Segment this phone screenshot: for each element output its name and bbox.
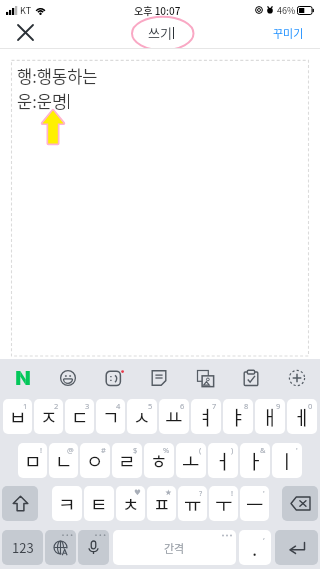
staticText: 오후 10:07: [134, 3, 181, 17]
staticText: 3: [85, 401, 90, 411]
button[interactable]: Enter: [275, 530, 318, 565]
button[interactable]: Photo: [182, 359, 228, 396]
staticText: ?: [199, 488, 203, 498]
staticText: ㅐ: [261, 403, 279, 431]
staticText: ㅎ: [150, 447, 168, 475]
staticText: 9: [276, 401, 281, 411]
staticText: !: [40, 445, 43, 455]
staticText: 123: [12, 538, 34, 557]
button[interactable]: ㄷ: [65, 399, 94, 434]
button[interactable]: ㅇ: [80, 443, 110, 478]
staticText: #: [101, 445, 106, 455]
staticText: 8: [244, 401, 249, 411]
staticText: 운:운명: [17, 89, 68, 113]
staticText: !: [231, 488, 234, 498]
button[interactable]: ㅜ: [209, 486, 238, 521]
button[interactable]: Shift: [2, 486, 38, 521]
button[interactable]: .: [239, 530, 271, 565]
button[interactable]: 꾸미기: [273, 25, 304, 41]
staticText: ): [231, 445, 234, 455]
staticText: ㄹ: [118, 447, 136, 475]
staticText: .: [252, 534, 258, 562]
button[interactable]: ㅏ: [240, 443, 270, 478]
staticText: ㅋ: [58, 490, 76, 518]
staticText: ㅑ: [229, 403, 247, 431]
staticText: ,: [263, 531, 266, 541]
button[interactable]: ㅍ: [147, 486, 176, 521]
staticText: ㅕ: [197, 403, 215, 431]
staticText: %: [163, 445, 170, 455]
button[interactable]: ㅡ: [240, 486, 269, 521]
button[interactable]: ㄹ: [112, 443, 142, 478]
staticText: 4: [116, 401, 121, 411]
staticText: 5: [148, 401, 153, 411]
button[interactable]: More: [274, 359, 320, 396]
button[interactable]: ㅋ: [52, 486, 82, 521]
button[interactable]: Naver: [0, 359, 45, 396]
staticText: ㅂ: [9, 403, 27, 431]
staticText: ㅇ: [86, 447, 104, 475]
button[interactable]: ㅕ: [191, 399, 221, 434]
button[interactable]: ㄴ: [49, 443, 78, 478]
button[interactable]: ㅗ: [176, 443, 206, 478]
button[interactable]: ㅎ: [144, 443, 174, 478]
staticText: ㅁ: [24, 447, 42, 475]
staticText: ㅍ: [153, 490, 171, 518]
staticText: 6: [180, 401, 185, 411]
button[interactable]: Language: [45, 530, 76, 565]
staticText: ㅡ: [246, 490, 264, 518]
staticText: 1: [23, 401, 28, 411]
button[interactable]: ㅔ: [287, 399, 317, 434]
staticText: ㄱ: [102, 403, 120, 431]
staticText: ♥: [134, 488, 141, 497]
staticText: ': [296, 445, 298, 455]
button[interactable]: ㄱ: [96, 399, 125, 434]
button[interactable]: Memo: [136, 359, 182, 396]
staticText: ㅈ: [40, 403, 58, 431]
staticText: ㅗ: [182, 447, 200, 475]
button[interactable]: Voice: [78, 530, 109, 565]
button[interactable]: Numbers: [2, 530, 43, 565]
button[interactable]: Backspace: [282, 486, 318, 521]
staticText: ㅏ: [246, 447, 264, 475]
staticText: ㄷ: [71, 403, 89, 431]
staticText: ㅊ: [122, 490, 140, 518]
staticText: ㅔ: [293, 403, 311, 431]
button[interactable]: Close: [12, 18, 39, 47]
button[interactable]: ㅅ: [127, 399, 157, 434]
button[interactable]: ㅓ: [208, 443, 238, 478]
staticText: &: [260, 445, 266, 455]
staticText: ㅓ: [214, 447, 232, 475]
staticText: @: [67, 445, 74, 455]
button[interactable]: Emoji: [45, 359, 90, 396]
button[interactable]: ㅌ: [84, 486, 114, 521]
staticText: ㅛ: [165, 403, 183, 431]
staticText: ㅌ: [90, 490, 108, 518]
button[interactable]: ㅐ: [255, 399, 285, 434]
button[interactable]: ㅁ: [18, 443, 47, 478]
staticText: ㅜ: [215, 490, 233, 518]
button[interactable]: ㅛ: [159, 399, 189, 434]
staticText: ㅅ: [133, 403, 151, 431]
staticText: 0: [308, 401, 313, 411]
staticText: 쓰기: [148, 23, 172, 42]
button[interactable]: ㅑ: [223, 399, 253, 434]
button[interactable]: ㅠ: [178, 486, 207, 521]
staticText: 2: [54, 401, 59, 411]
button[interactable]: 쓰기: [148, 23, 174, 42]
staticText: ㄴ: [55, 447, 73, 475]
staticText: 꾸미기: [273, 25, 304, 41]
staticText: ㅣ: [278, 447, 296, 475]
button[interactable]: ㅊ: [116, 486, 145, 521]
button[interactable]: ㅂ: [3, 399, 32, 434]
staticText: 7: [212, 401, 217, 411]
staticText: KT: [20, 4, 32, 17]
staticText: 간격: [164, 540, 185, 556]
button[interactable]: 간격: [113, 530, 236, 565]
staticText: ': [263, 488, 265, 498]
staticText: 46%: [277, 4, 296, 17]
button[interactable]: Todo: [228, 359, 274, 396]
button[interactable]: ㅈ: [34, 399, 63, 434]
button[interactable]: Sticker: [90, 359, 136, 396]
button[interactable]: ㅣ: [272, 443, 302, 478]
